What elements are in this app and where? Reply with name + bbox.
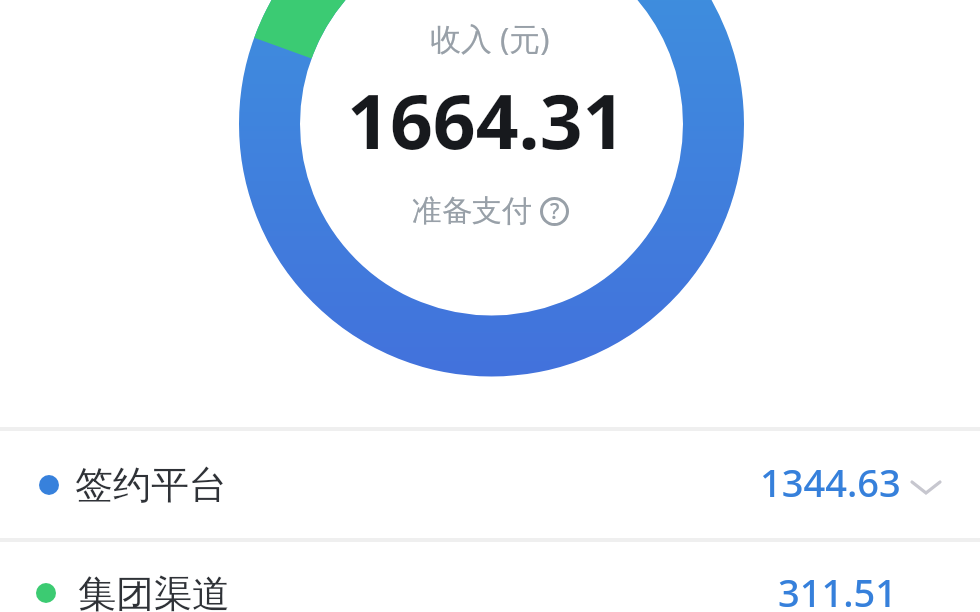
- button[interactable]: 准备支付: [412, 192, 569, 230]
- staticText: 收入 (元): [430, 17, 550, 59]
- staticText: 311.51: [778, 566, 898, 612]
- staticText: 准备支付: [412, 192, 532, 230]
- button[interactable]: 签约平台: [0, 431, 980, 538]
- staticText: 1664.31: [347, 69, 626, 171]
- button[interactable]: 集团渠道: [0, 542, 980, 612]
- staticText: ?: [550, 197, 560, 226]
- staticText: 1344.63: [760, 456, 901, 508]
- staticText: 集团渠道: [78, 570, 230, 612]
- staticText: 签约平台: [75, 461, 227, 509]
